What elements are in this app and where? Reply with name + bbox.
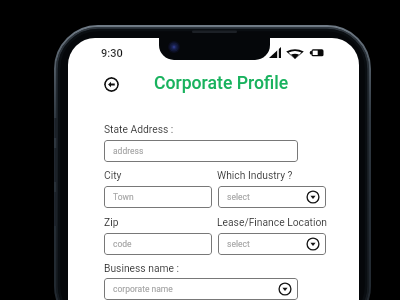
button[interactable]: corporate name [104, 278, 298, 300]
staticText: code [113, 239, 132, 249]
button[interactable]: select [218, 186, 326, 208]
button[interactable]: Town [104, 186, 212, 208]
staticText: Lease/Finance Location [217, 216, 328, 228]
button[interactable]: address [104, 140, 298, 162]
staticText: 9:30 [101, 47, 123, 60]
staticText: Town [113, 192, 134, 202]
staticText: address [113, 146, 144, 156]
staticText: select [227, 239, 250, 249]
staticText: City [104, 169, 122, 181]
button[interactable]: Back [104, 77, 119, 92]
staticText: Corporate Profile [154, 73, 289, 94]
button[interactable]: code [104, 233, 212, 255]
staticText: corporate name [113, 284, 173, 294]
staticText: Which Industry ? [217, 169, 293, 181]
button[interactable]: select [218, 233, 326, 255]
staticText: select [227, 192, 250, 202]
staticText: Zip [104, 216, 119, 228]
staticText: Business name : [104, 262, 180, 274]
staticText: State Address : [104, 123, 174, 135]
